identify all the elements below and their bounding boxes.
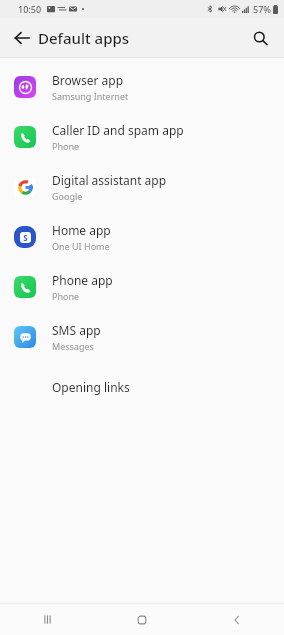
button[interactable]: Navigate up — [6, 22, 38, 54]
staticText: Phone — [52, 140, 80, 152]
staticText: SMS app — [52, 322, 101, 338]
staticText: S — [23, 232, 28, 243]
staticText: One UI Home — [52, 240, 110, 252]
staticText: Phone app — [52, 272, 113, 288]
staticText: Home app — [52, 222, 111, 238]
staticText: Google — [52, 190, 83, 202]
button[interactable]: Caller ID and spam app — [0, 112, 284, 162]
staticText: Messages — [52, 340, 94, 352]
staticText: 57% — [253, 3, 271, 15]
staticText: Caller ID and spam app — [52, 122, 184, 138]
button[interactable]: Home — [94, 604, 189, 635]
button[interactable]: S — [0, 212, 284, 262]
staticText: Samsung Internet — [52, 90, 129, 102]
staticText: Browser app — [52, 72, 124, 88]
staticText: Phone — [52, 290, 80, 302]
button[interactable]: Recent apps — [0, 604, 94, 635]
staticText: Opening links — [52, 379, 130, 395]
staticText: Default apps — [38, 28, 130, 48]
button[interactable]: Back — [189, 604, 284, 635]
button[interactable]: Browser app — [0, 62, 284, 112]
button[interactable]: Opening links — [0, 362, 284, 412]
button[interactable]: Digital assistant app — [0, 162, 284, 212]
button[interactable]: Search — [244, 22, 276, 54]
button[interactable]: SMS app — [0, 312, 284, 362]
staticText: 10:50 — [18, 3, 42, 15]
button[interactable]: Phone app — [0, 262, 284, 312]
staticText: Digital assistant app — [52, 172, 167, 188]
